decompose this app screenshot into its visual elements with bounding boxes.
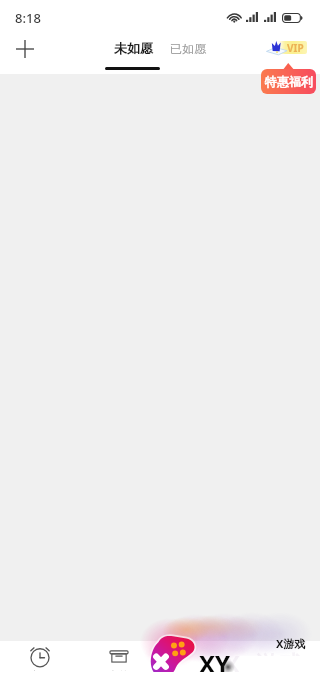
button[interactable]: Add wish	[9, 33, 41, 65]
staticText: 特惠福利	[265, 74, 313, 89]
staticText: 归档	[110, 670, 128, 671]
staticText: 心愿	[31, 670, 49, 671]
button[interactable]: 未如愿	[101, 33, 165, 74]
button[interactable]: VIP	[264, 35, 310, 55]
staticText: X游戏	[276, 636, 306, 651]
button[interactable]: Reminders	[24, 640, 56, 672]
staticText: XY	[199, 647, 231, 672]
button[interactable]: 已如愿	[158, 33, 218, 74]
staticText: VIP	[287, 41, 304, 55]
staticText: XY游戏	[224, 647, 304, 672]
staticText: 未如愿	[114, 40, 153, 56]
staticText: 8:18	[15, 9, 41, 27]
button[interactable]: 特惠福利	[261, 69, 316, 94]
button[interactable]: Archive	[103, 640, 135, 672]
staticText: 已如愿	[170, 41, 206, 56]
